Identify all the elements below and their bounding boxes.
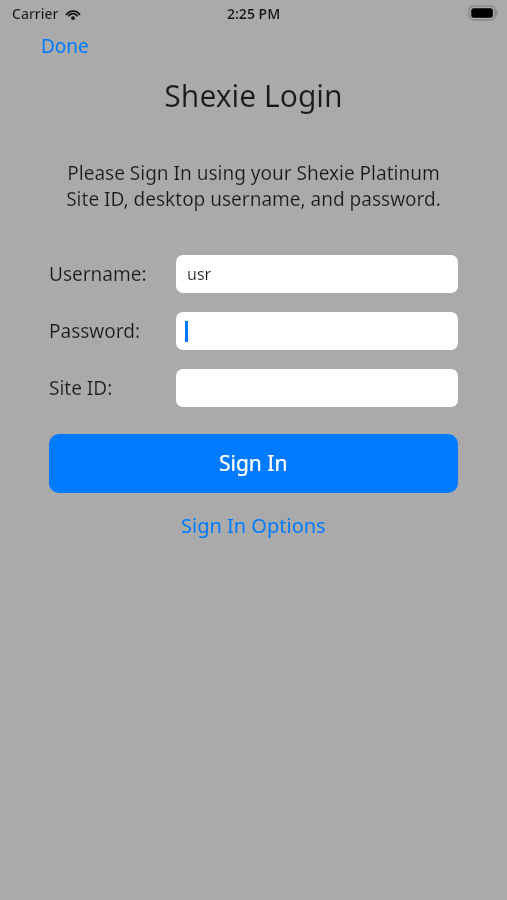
button[interactable]: Site ID: [176,369,458,407]
staticText: Please Sign In using your Shexie Platinu… [24,160,483,211]
staticText: Carrier [12,4,59,23]
button[interactable]: Sign In [49,434,458,493]
button[interactable]: Password: [176,312,458,350]
staticText: Username: [49,261,147,287]
staticText: Password: [49,318,141,344]
staticText: Done [41,33,89,59]
staticText: usr [187,263,212,285]
button[interactable]: Username: [176,255,458,293]
staticText: Sign In [219,449,288,478]
button[interactable]: Sign In Options [169,507,338,544]
button[interactable]: Done [30,30,100,62]
staticText: Shexie Login [0,75,507,116]
staticText: 2:25 PM [227,4,281,23]
staticText: Site ID: [49,375,113,401]
staticText: Sign In Options [181,512,326,539]
